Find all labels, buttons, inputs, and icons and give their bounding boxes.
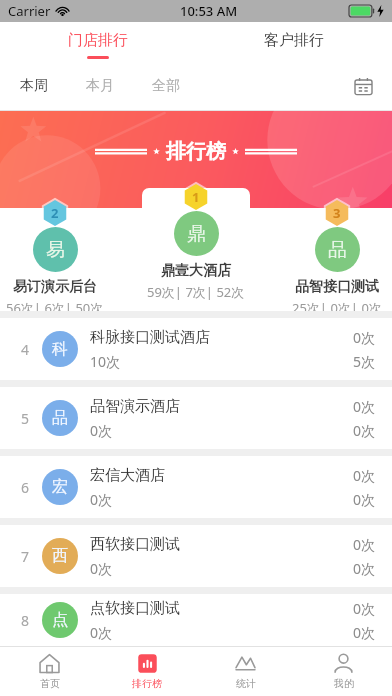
staticText: 59次| 7次| 52次 — [147, 283, 245, 301]
staticText: 西软接口测试 — [90, 535, 180, 554]
button[interactable]: 1 — [126, 183, 266, 301]
button[interactable]: 5 — [0, 387, 392, 449]
staticText: 宏信大酒店 — [90, 466, 165, 485]
staticText: 0次 — [90, 623, 113, 642]
staticText: 0次 — [90, 559, 113, 578]
staticText: 6 — [21, 478, 30, 497]
staticText: 4 — [21, 340, 30, 359]
staticText: 0次 — [353, 535, 376, 554]
staticText: 排行榜 — [132, 677, 162, 690]
button[interactable]: Select date — [348, 71, 378, 101]
staticText: 0次 — [353, 466, 376, 485]
staticText: 易 — [46, 238, 65, 262]
staticText: 品 — [52, 408, 68, 428]
staticText: 7 — [21, 547, 30, 566]
staticText: 排行榜 — [166, 139, 226, 164]
button[interactable]: 本月 — [80, 71, 120, 101]
staticText: 西 — [52, 546, 68, 566]
staticText: 10次 — [90, 352, 121, 371]
staticText: 本月 — [86, 77, 114, 95]
button[interactable]: 统计 — [196, 647, 294, 696]
button[interactable]: 我的 — [294, 647, 392, 696]
staticText: 0次 — [353, 490, 376, 509]
staticText: 品智接口测试 — [295, 278, 379, 296]
button[interactable]: 4 — [0, 318, 392, 380]
staticText: Carrier — [8, 2, 51, 20]
staticText: 0次 — [353, 559, 376, 578]
staticText: 0次 — [90, 421, 113, 440]
staticText: 宏 — [52, 477, 68, 497]
staticText: 1 — [192, 188, 200, 206]
button[interactable]: 2 — [0, 199, 110, 311]
button[interactable]: 客户排行 — [196, 22, 392, 62]
staticText: 易订演示后台 — [13, 278, 97, 296]
staticText: 科脉接口测试酒店 — [90, 328, 210, 347]
button[interactable]: 首页 — [0, 647, 98, 696]
staticText: 本周 — [20, 77, 48, 95]
button[interactable]: 全部 — [146, 71, 186, 101]
button[interactable]: 6 — [0, 456, 392, 518]
staticText: 25次| 0次| 0次 — [292, 299, 382, 311]
staticText: 客户排行 — [264, 31, 324, 50]
staticText: 点 — [52, 610, 68, 630]
staticText: 鼎 — [187, 222, 206, 246]
staticText: 0次 — [353, 599, 376, 618]
staticText: 10:53 AM — [180, 2, 238, 20]
staticText: 0次 — [353, 397, 376, 416]
button[interactable]: 8 — [0, 594, 392, 646]
button[interactable]: 排行榜 — [98, 647, 196, 696]
button[interactable]: 门店排行 — [0, 22, 196, 62]
staticText: 鼎壹大酒店 — [161, 262, 231, 280]
button[interactable]: 本周 — [14, 71, 54, 101]
staticText: 0次 — [353, 328, 376, 347]
staticText: 3 — [333, 204, 341, 222]
staticText: 科 — [52, 339, 68, 359]
staticText: 全部 — [152, 77, 180, 95]
staticText: 0次 — [353, 623, 376, 642]
staticText: 0次 — [353, 421, 376, 440]
button[interactable]: 3 — [282, 199, 392, 311]
staticText: 0次 — [90, 490, 113, 509]
staticText: 品智演示酒店 — [90, 397, 180, 416]
button[interactable]: 7 — [0, 525, 392, 587]
staticText: 56次| 6次| 50次 — [6, 299, 104, 311]
staticText: 点软接口测试 — [90, 599, 180, 618]
staticText: 统计 — [236, 677, 256, 690]
staticText: 首页 — [40, 677, 60, 690]
staticText: 8 — [21, 611, 30, 630]
staticText: 门店排行 — [68, 31, 128, 50]
staticText: 5次 — [353, 352, 376, 371]
staticText: 品 — [328, 238, 347, 262]
staticText: 2 — [51, 204, 59, 222]
staticText: 我的 — [334, 677, 354, 690]
staticText: 5 — [21, 409, 30, 428]
